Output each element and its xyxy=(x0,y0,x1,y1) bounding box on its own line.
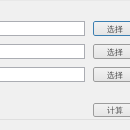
staticText: 选择 xyxy=(107,24,123,34)
staticText: 选择 xyxy=(107,70,123,80)
button[interactable]: 选择 xyxy=(93,44,130,59)
staticText: 计算 xyxy=(107,105,123,115)
button[interactable]: Path field 3 xyxy=(0,67,85,82)
button[interactable]: 选择 xyxy=(93,21,130,36)
button[interactable]: Path field 1 xyxy=(0,21,85,36)
button[interactable]: 选择 xyxy=(93,67,130,82)
staticText: 选择 xyxy=(107,47,123,57)
button[interactable]: 计算 xyxy=(93,103,130,117)
button[interactable]: Path field 2 xyxy=(0,44,85,59)
